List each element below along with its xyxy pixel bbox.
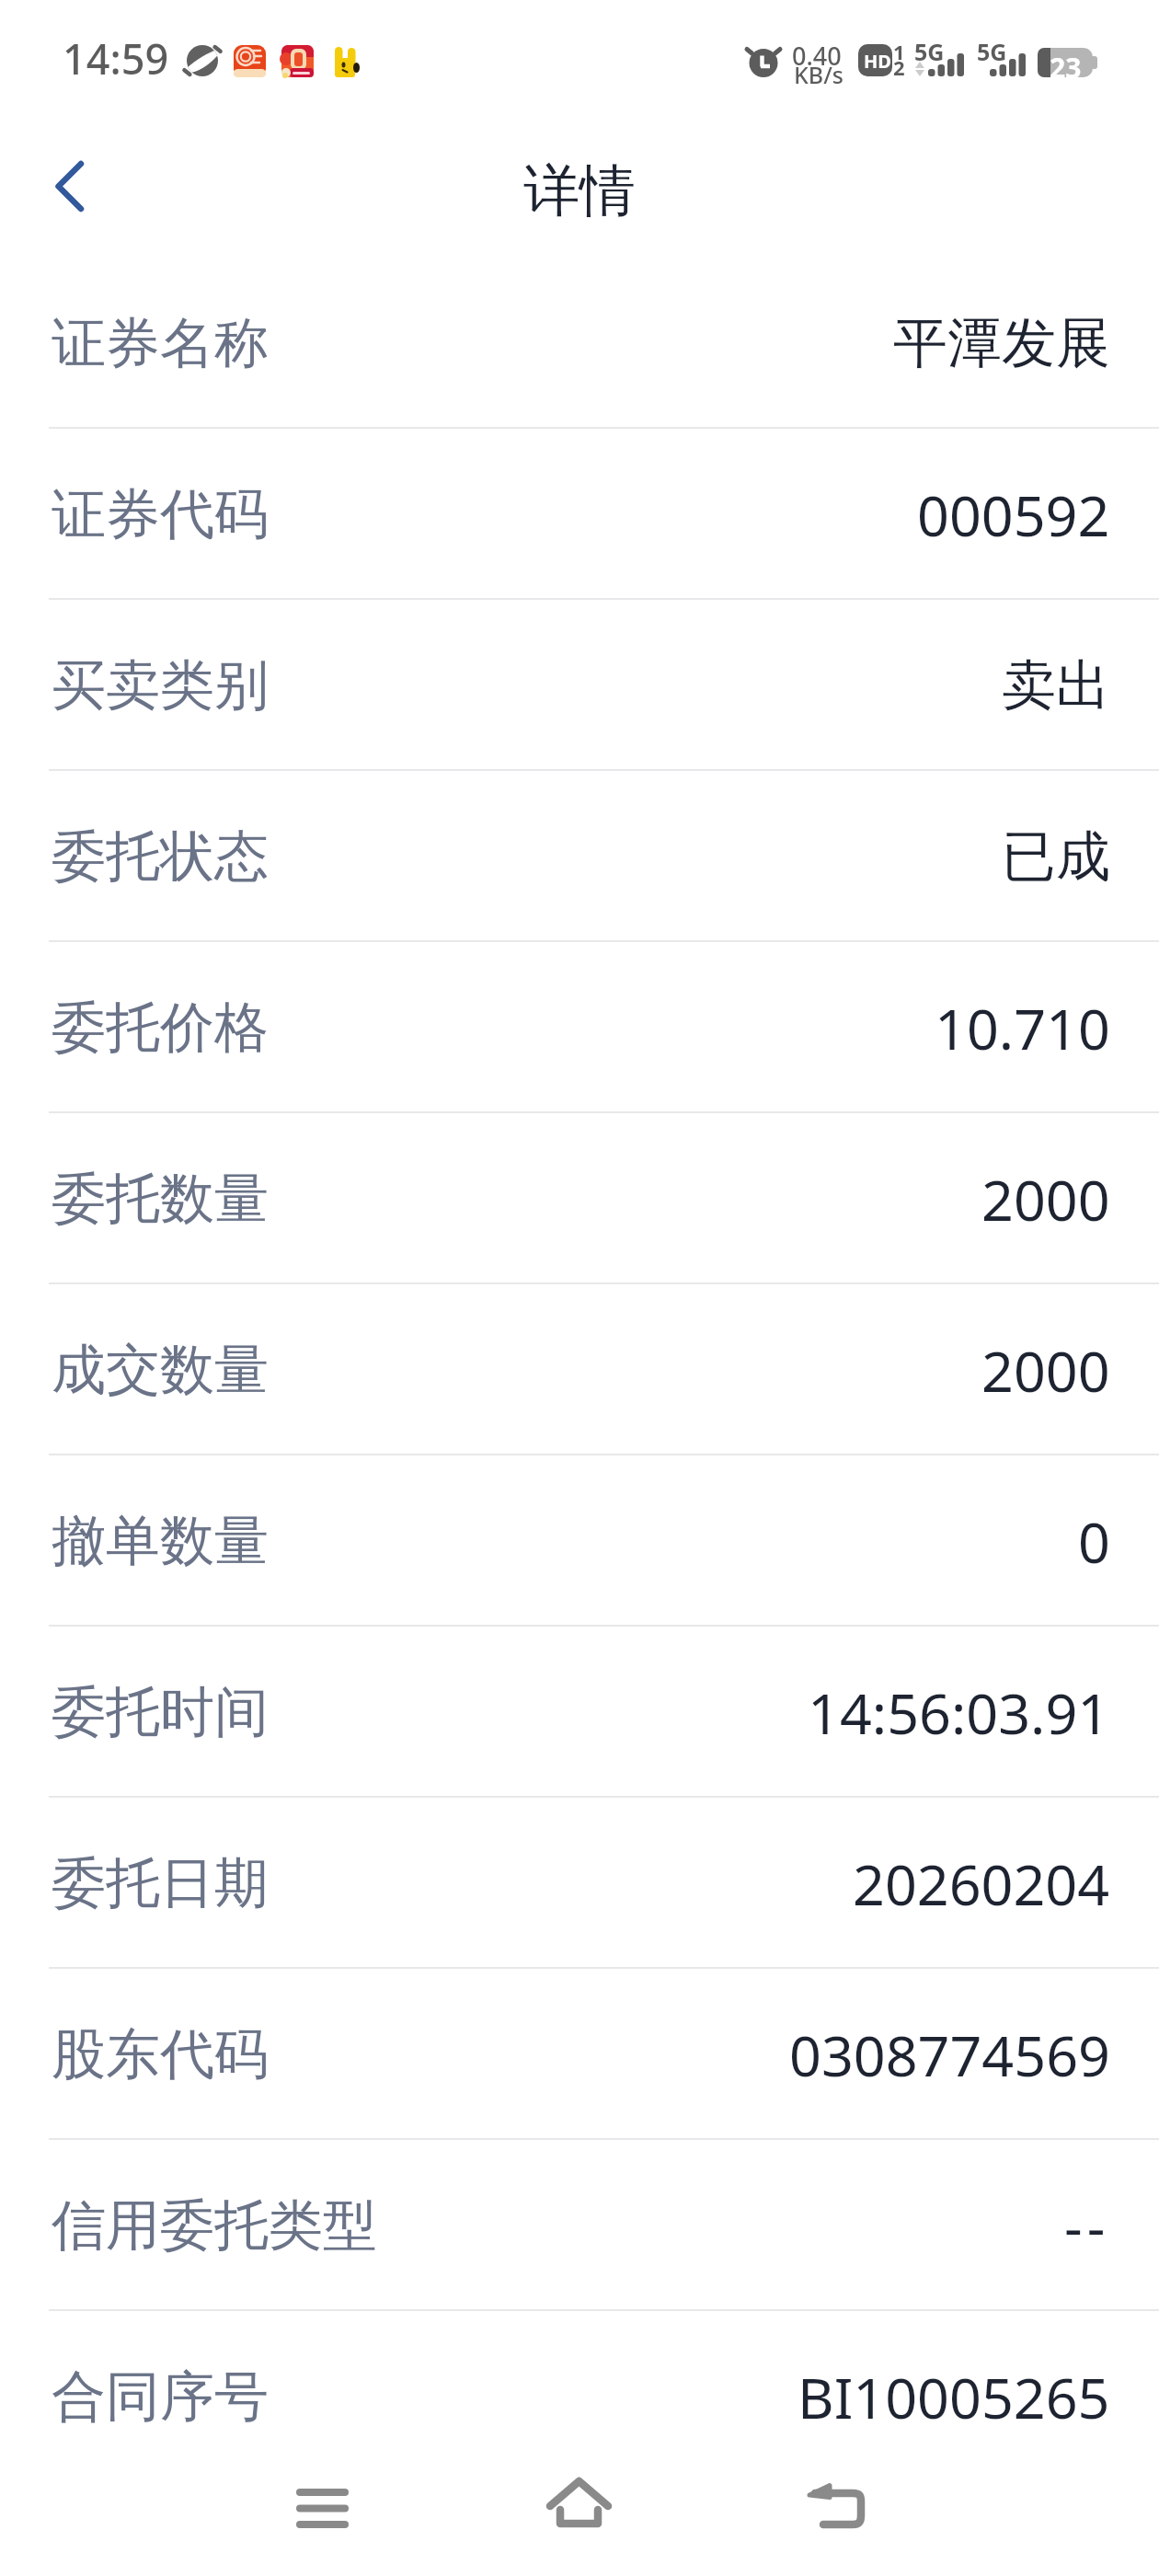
button[interactable]: 撤单数量 xyxy=(0,1455,1159,1627)
button[interactable]: 证券名称 xyxy=(0,258,1159,429)
staticText: 信用委托类型 xyxy=(52,2191,377,2260)
staticText: 10.710 xyxy=(935,990,1110,1066)
staticText: -- xyxy=(1064,2188,1110,2264)
staticText: 20260204 xyxy=(853,1846,1110,1922)
staticText: 详情 xyxy=(523,155,636,226)
button[interactable]: Home xyxy=(515,2447,644,2576)
staticText: 2000 xyxy=(981,1332,1110,1409)
button[interactable]: 证券代码 xyxy=(0,429,1159,600)
button[interactable]: Back xyxy=(773,2447,901,2576)
staticText: 5G xyxy=(977,36,1007,67)
staticText: 买卖类别 xyxy=(52,651,269,719)
button[interactable]: 买卖类别 xyxy=(0,600,1159,771)
staticText: 委托价格 xyxy=(52,994,269,1062)
button[interactable]: 委托状态 xyxy=(0,771,1159,942)
staticText: BI10005265 xyxy=(798,2359,1110,2435)
button[interactable]: 委托数量 xyxy=(0,1113,1159,1284)
button[interactable]: Back xyxy=(20,136,121,237)
button[interactable]: 委托日期 xyxy=(0,1798,1159,1969)
staticText: 0 xyxy=(1078,1503,1110,1580)
staticText: 证券名称 xyxy=(52,309,269,377)
staticText: 委托状态 xyxy=(52,822,269,891)
staticText: 14:59 xyxy=(63,30,169,86)
staticText: 合同序号 xyxy=(52,2363,269,2431)
staticText: 委托数量 xyxy=(52,1165,269,1233)
staticText: 委托日期 xyxy=(52,1849,269,1917)
staticText: 14:56:03.91 xyxy=(808,1674,1110,1751)
staticText: 股东代码 xyxy=(52,2020,269,2088)
staticText: 2 xyxy=(893,53,905,81)
staticText: HD xyxy=(864,49,891,74)
button[interactable]: 委托价格 xyxy=(0,942,1159,1113)
staticText: 5G xyxy=(914,36,945,67)
staticText: 1 xyxy=(893,38,905,65)
button[interactable]: 合同序号 xyxy=(0,2311,1159,2482)
staticText: 已成 xyxy=(1002,822,1110,891)
button[interactable]: Recent apps xyxy=(258,2447,386,2576)
button[interactable]: 成交数量 xyxy=(0,1284,1159,1455)
staticText: KB/s xyxy=(794,59,843,90)
staticText: 000592 xyxy=(917,477,1110,553)
staticText: 0308774569 xyxy=(789,2017,1110,2093)
staticText: 成交数量 xyxy=(52,1336,269,1404)
staticText: 委托时间 xyxy=(52,1678,269,1746)
staticText: 卖出 xyxy=(1002,651,1110,719)
button[interactable]: 信用委托类型 xyxy=(0,2140,1159,2311)
staticText: 撤单数量 xyxy=(52,1507,269,1575)
staticText: 2000 xyxy=(981,1161,1110,1237)
button[interactable]: 股东代码 xyxy=(0,1969,1159,2140)
staticText: 23 xyxy=(1050,49,1082,86)
staticText: 0.40 xyxy=(792,39,842,73)
staticText: 平潭发展 xyxy=(893,309,1110,377)
staticText: 证券代码 xyxy=(52,480,269,548)
button[interactable]: 委托时间 xyxy=(0,1627,1159,1798)
